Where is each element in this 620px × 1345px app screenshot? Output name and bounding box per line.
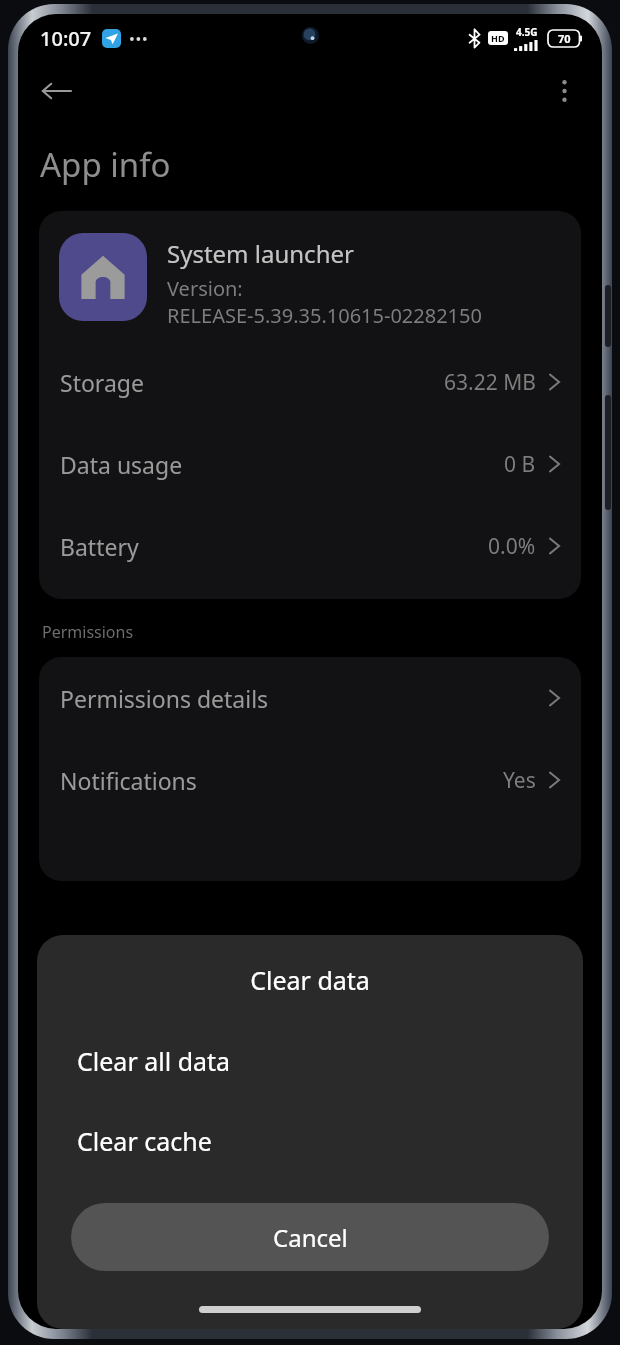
- staticText: App info: [40, 142, 171, 187]
- button[interactable]: Permissions details: [39, 657, 581, 739]
- staticText: Data usage: [60, 449, 183, 480]
- staticText: 4.5G: [516, 25, 538, 39]
- staticText: 0 B: [504, 450, 536, 479]
- staticText: Version:: [167, 275, 243, 302]
- button[interactable]: Cancel: [71, 1203, 549, 1271]
- staticText: 70: [558, 31, 571, 46]
- button[interactable]: Clear all data: [37, 1021, 583, 1101]
- button[interactable]: Battery: [39, 505, 581, 587]
- staticText: Battery: [60, 531, 139, 562]
- staticText: Clear cache: [77, 1124, 212, 1158]
- staticText: Notifications: [60, 765, 197, 796]
- staticText: RELEASE-5.39.35.10615-02282150: [167, 302, 482, 329]
- staticText: Permissions: [42, 621, 134, 643]
- staticText: Clear all data: [77, 1044, 231, 1078]
- staticText: Permissions details: [60, 683, 269, 714]
- staticText: HD: [491, 32, 505, 44]
- button[interactable]: Notifications: [39, 739, 581, 821]
- staticText: Yes: [503, 766, 536, 795]
- staticText: 63.22 MB: [444, 368, 536, 397]
- staticText: Clear data: [37, 963, 583, 997]
- staticText: Storage: [60, 367, 144, 398]
- staticText: Cancel: [273, 1221, 348, 1254]
- button[interactable]: Data usage: [39, 423, 581, 505]
- staticText: 0.0%: [488, 532, 536, 561]
- button[interactable]: More options: [540, 67, 588, 115]
- button[interactable]: Storage: [39, 341, 581, 423]
- staticText: 10:07: [40, 25, 92, 52]
- staticText: System launcher: [167, 237, 354, 270]
- button[interactable]: Clear cache: [37, 1101, 583, 1181]
- button[interactable]: Back: [30, 65, 82, 117]
